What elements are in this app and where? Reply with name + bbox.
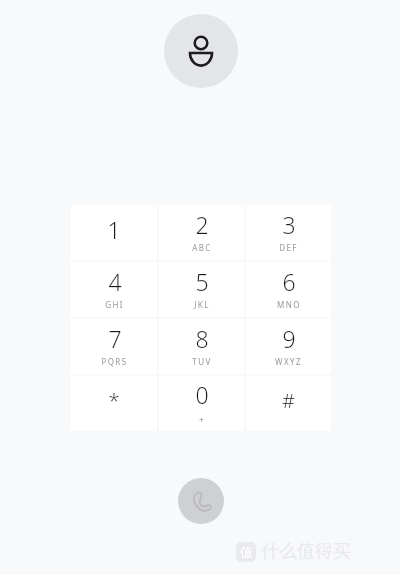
button[interactable]: 4 [71, 262, 157, 317]
button[interactable]: 7 [71, 319, 157, 374]
button[interactable]: 6 [246, 262, 331, 317]
staticText: + [199, 414, 205, 425]
staticText: GHI [105, 299, 124, 310]
staticText: MNO [277, 299, 301, 310]
staticText: TUV [192, 356, 212, 367]
staticText: 1 [107, 214, 121, 245]
staticText: WXYZ [275, 356, 302, 367]
button[interactable]: 5 [159, 262, 244, 317]
staticText: 什么值得买 [261, 540, 351, 563]
staticText: 4 [108, 266, 122, 297]
button[interactable]: 2 [159, 205, 244, 260]
staticText: 3 [282, 209, 296, 240]
staticText: 8 [195, 323, 209, 354]
staticText: 9 [282, 323, 296, 354]
staticText: * [108, 387, 120, 414]
button[interactable]: * [71, 376, 157, 431]
staticText: 5 [195, 266, 209, 297]
staticText: ABC [192, 242, 212, 253]
staticText: 0 [195, 379, 209, 410]
staticText: 值 [240, 544, 253, 560]
button[interactable]: Call [178, 478, 224, 524]
button[interactable]: 0 [159, 376, 244, 431]
staticText: DEF [279, 242, 298, 253]
button[interactable]: # [246, 376, 331, 431]
button[interactable]: 8 [159, 319, 244, 374]
staticText: 6 [282, 266, 296, 297]
button[interactable]: 1 [71, 205, 157, 260]
staticText: # [282, 387, 295, 414]
button[interactable]: 9 [246, 319, 331, 374]
staticText: PQRS [101, 356, 128, 367]
staticText: JKL [194, 299, 210, 310]
staticText: 7 [108, 323, 122, 354]
button[interactable]: 3 [246, 205, 331, 260]
button[interactable]: Contacts [164, 14, 238, 88]
staticText: 2 [195, 209, 209, 240]
